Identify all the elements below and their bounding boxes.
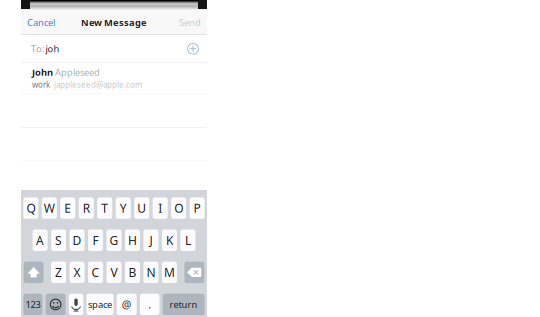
button[interactable]: B bbox=[125, 262, 140, 283]
staticText: L bbox=[185, 232, 191, 248]
staticText: F bbox=[92, 232, 98, 248]
button[interactable]: Shift bbox=[24, 262, 44, 283]
staticText: @ bbox=[122, 297, 132, 312]
staticText: E bbox=[64, 200, 71, 216]
button[interactable]: X bbox=[70, 262, 85, 283]
button[interactable]: John bbox=[21, 63, 207, 93]
button[interactable]: Delete bbox=[184, 262, 204, 283]
staticText: John bbox=[32, 66, 55, 78]
staticText: H bbox=[128, 232, 137, 248]
staticText: return bbox=[170, 298, 198, 311]
button[interactable]: Dictation bbox=[69, 294, 83, 315]
button[interactable]: Y bbox=[116, 197, 131, 219]
staticText: work bbox=[32, 79, 52, 90]
staticText: Send bbox=[179, 16, 201, 29]
staticText: C bbox=[91, 264, 99, 280]
staticText: space bbox=[88, 298, 112, 311]
button[interactable]: Emoji bbox=[46, 294, 66, 315]
staticText: W bbox=[44, 200, 55, 216]
button[interactable]: @ bbox=[117, 294, 137, 315]
button[interactable]: Add contact bbox=[182, 39, 207, 59]
button[interactable]: M bbox=[162, 262, 177, 283]
button[interactable]: J bbox=[143, 229, 158, 251]
button[interactable]: 123 bbox=[23, 294, 42, 315]
button[interactable]: . bbox=[140, 294, 159, 315]
staticText: O bbox=[174, 200, 183, 216]
staticText: V bbox=[110, 264, 117, 280]
staticText: X bbox=[74, 264, 81, 280]
staticText: U bbox=[137, 200, 146, 216]
button[interactable]: S bbox=[51, 229, 66, 251]
staticText: T bbox=[101, 200, 108, 216]
button[interactable]: L bbox=[180, 229, 195, 251]
button[interactable]: K bbox=[162, 229, 177, 251]
staticText: Z bbox=[55, 264, 62, 280]
button[interactable]: I bbox=[153, 197, 168, 219]
staticText: Appleseed bbox=[55, 66, 100, 78]
button[interactable]: G bbox=[106, 229, 121, 251]
button[interactable]: W bbox=[42, 197, 57, 219]
staticText: M bbox=[164, 264, 175, 280]
button[interactable]: V bbox=[106, 262, 121, 283]
staticText: I bbox=[158, 200, 162, 216]
staticText: Cancel bbox=[27, 16, 55, 29]
staticText: D bbox=[73, 232, 82, 248]
staticText: joh bbox=[45, 43, 59, 55]
staticText: P bbox=[194, 200, 201, 216]
button[interactable]: H bbox=[125, 229, 140, 251]
staticText: Y bbox=[120, 200, 127, 216]
button[interactable]: Q bbox=[23, 197, 38, 219]
button[interactable]: U bbox=[134, 197, 149, 219]
staticText: S bbox=[55, 232, 62, 248]
button[interactable]: T bbox=[97, 197, 112, 219]
button[interactable]: Cancel bbox=[21, 10, 55, 34]
staticText: J bbox=[149, 232, 152, 248]
staticText: R bbox=[83, 200, 90, 216]
button[interactable]: return bbox=[163, 294, 205, 315]
staticText: A bbox=[36, 232, 44, 248]
button[interactable]: A bbox=[33, 229, 48, 251]
staticText: jappleseed@apple.com bbox=[52, 79, 142, 90]
button[interactable]: R bbox=[79, 197, 94, 219]
button[interactable]: F bbox=[88, 229, 103, 251]
button[interactable]: Z bbox=[51, 262, 66, 283]
staticText: K bbox=[166, 232, 173, 248]
staticText: B bbox=[128, 264, 136, 280]
button[interactable]: space bbox=[86, 294, 113, 315]
button[interactable]: Send bbox=[179, 10, 207, 34]
button[interactable]: P bbox=[190, 197, 205, 219]
button[interactable]: E bbox=[60, 197, 75, 219]
button[interactable]: N bbox=[143, 262, 158, 283]
button[interactable]: O bbox=[171, 197, 186, 219]
staticText: 123 bbox=[25, 298, 40, 311]
staticText: Q bbox=[26, 200, 35, 216]
staticText: G bbox=[109, 232, 118, 248]
button[interactable]: D bbox=[70, 229, 85, 251]
button[interactable]: C bbox=[88, 262, 103, 283]
staticText: N bbox=[146, 264, 155, 280]
staticText: To: bbox=[31, 43, 45, 55]
staticText: New Message bbox=[81, 16, 147, 29]
staticText: . bbox=[148, 297, 151, 312]
